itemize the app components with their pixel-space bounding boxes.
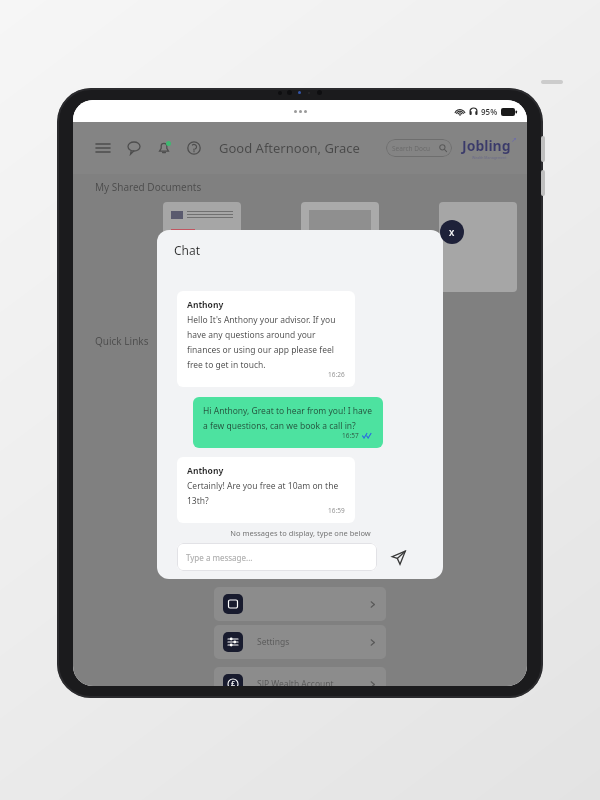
button[interactable]: Menu (95, 140, 111, 156)
staticText: Jobling (462, 136, 511, 155)
staticText: Type a message... (186, 552, 253, 563)
button[interactable]: No (301, 202, 379, 292)
staticText: Anthony (187, 465, 224, 477)
button[interactable]: Chat (127, 141, 141, 155)
staticText: My Shared Documents (95, 180, 202, 194)
staticText: SJP Wealth Account (257, 678, 334, 686)
button[interactable]: Notifications (157, 141, 171, 155)
button[interactable]: Send message (387, 546, 409, 568)
staticText: Quick Links (95, 334, 149, 348)
staticText: 16:59 (328, 506, 345, 515)
button[interactable]: Anthony (177, 457, 355, 523)
staticText: ↗ (511, 136, 517, 144)
staticText: Settings (257, 636, 290, 648)
button[interactable]: Close chat (440, 220, 464, 244)
button[interactable]: Hi Anthony, Great to hear from you! I ha… (193, 397, 383, 448)
button[interactable] (163, 202, 241, 292)
staticText: Hi Anthony, Great to hear from you! I ha… (203, 405, 373, 431)
button[interactable] (223, 587, 377, 621)
staticText: Wealth Management (472, 155, 507, 160)
button[interactable]: Search Docu (386, 139, 452, 157)
button[interactable]: Settings (223, 625, 377, 659)
button[interactable]: Type a message... (177, 543, 377, 571)
staticText: 16:26 (328, 370, 345, 379)
button[interactable]: Anthony (177, 291, 355, 387)
staticText: 16:57 (342, 431, 359, 440)
button[interactable]: Help (187, 141, 201, 155)
button[interactable] (439, 202, 517, 292)
staticText: Search Docu (392, 144, 431, 153)
staticText: Anthony (187, 299, 224, 311)
staticText: x (449, 225, 455, 239)
staticText: Certainly! Are you free at 10am on the 1… (187, 480, 345, 506)
staticText: No messages to display, type one below (230, 528, 371, 538)
staticText: 95% (481, 106, 498, 117)
staticText: Chat (174, 242, 201, 258)
staticText: £ (231, 679, 236, 686)
button[interactable]: £ (223, 667, 377, 686)
staticText: No (326, 228, 354, 254)
staticText: Good Afternoon, Grace (219, 139, 360, 157)
staticText: Hello It's Anthony your advisor. If you … (187, 314, 345, 370)
